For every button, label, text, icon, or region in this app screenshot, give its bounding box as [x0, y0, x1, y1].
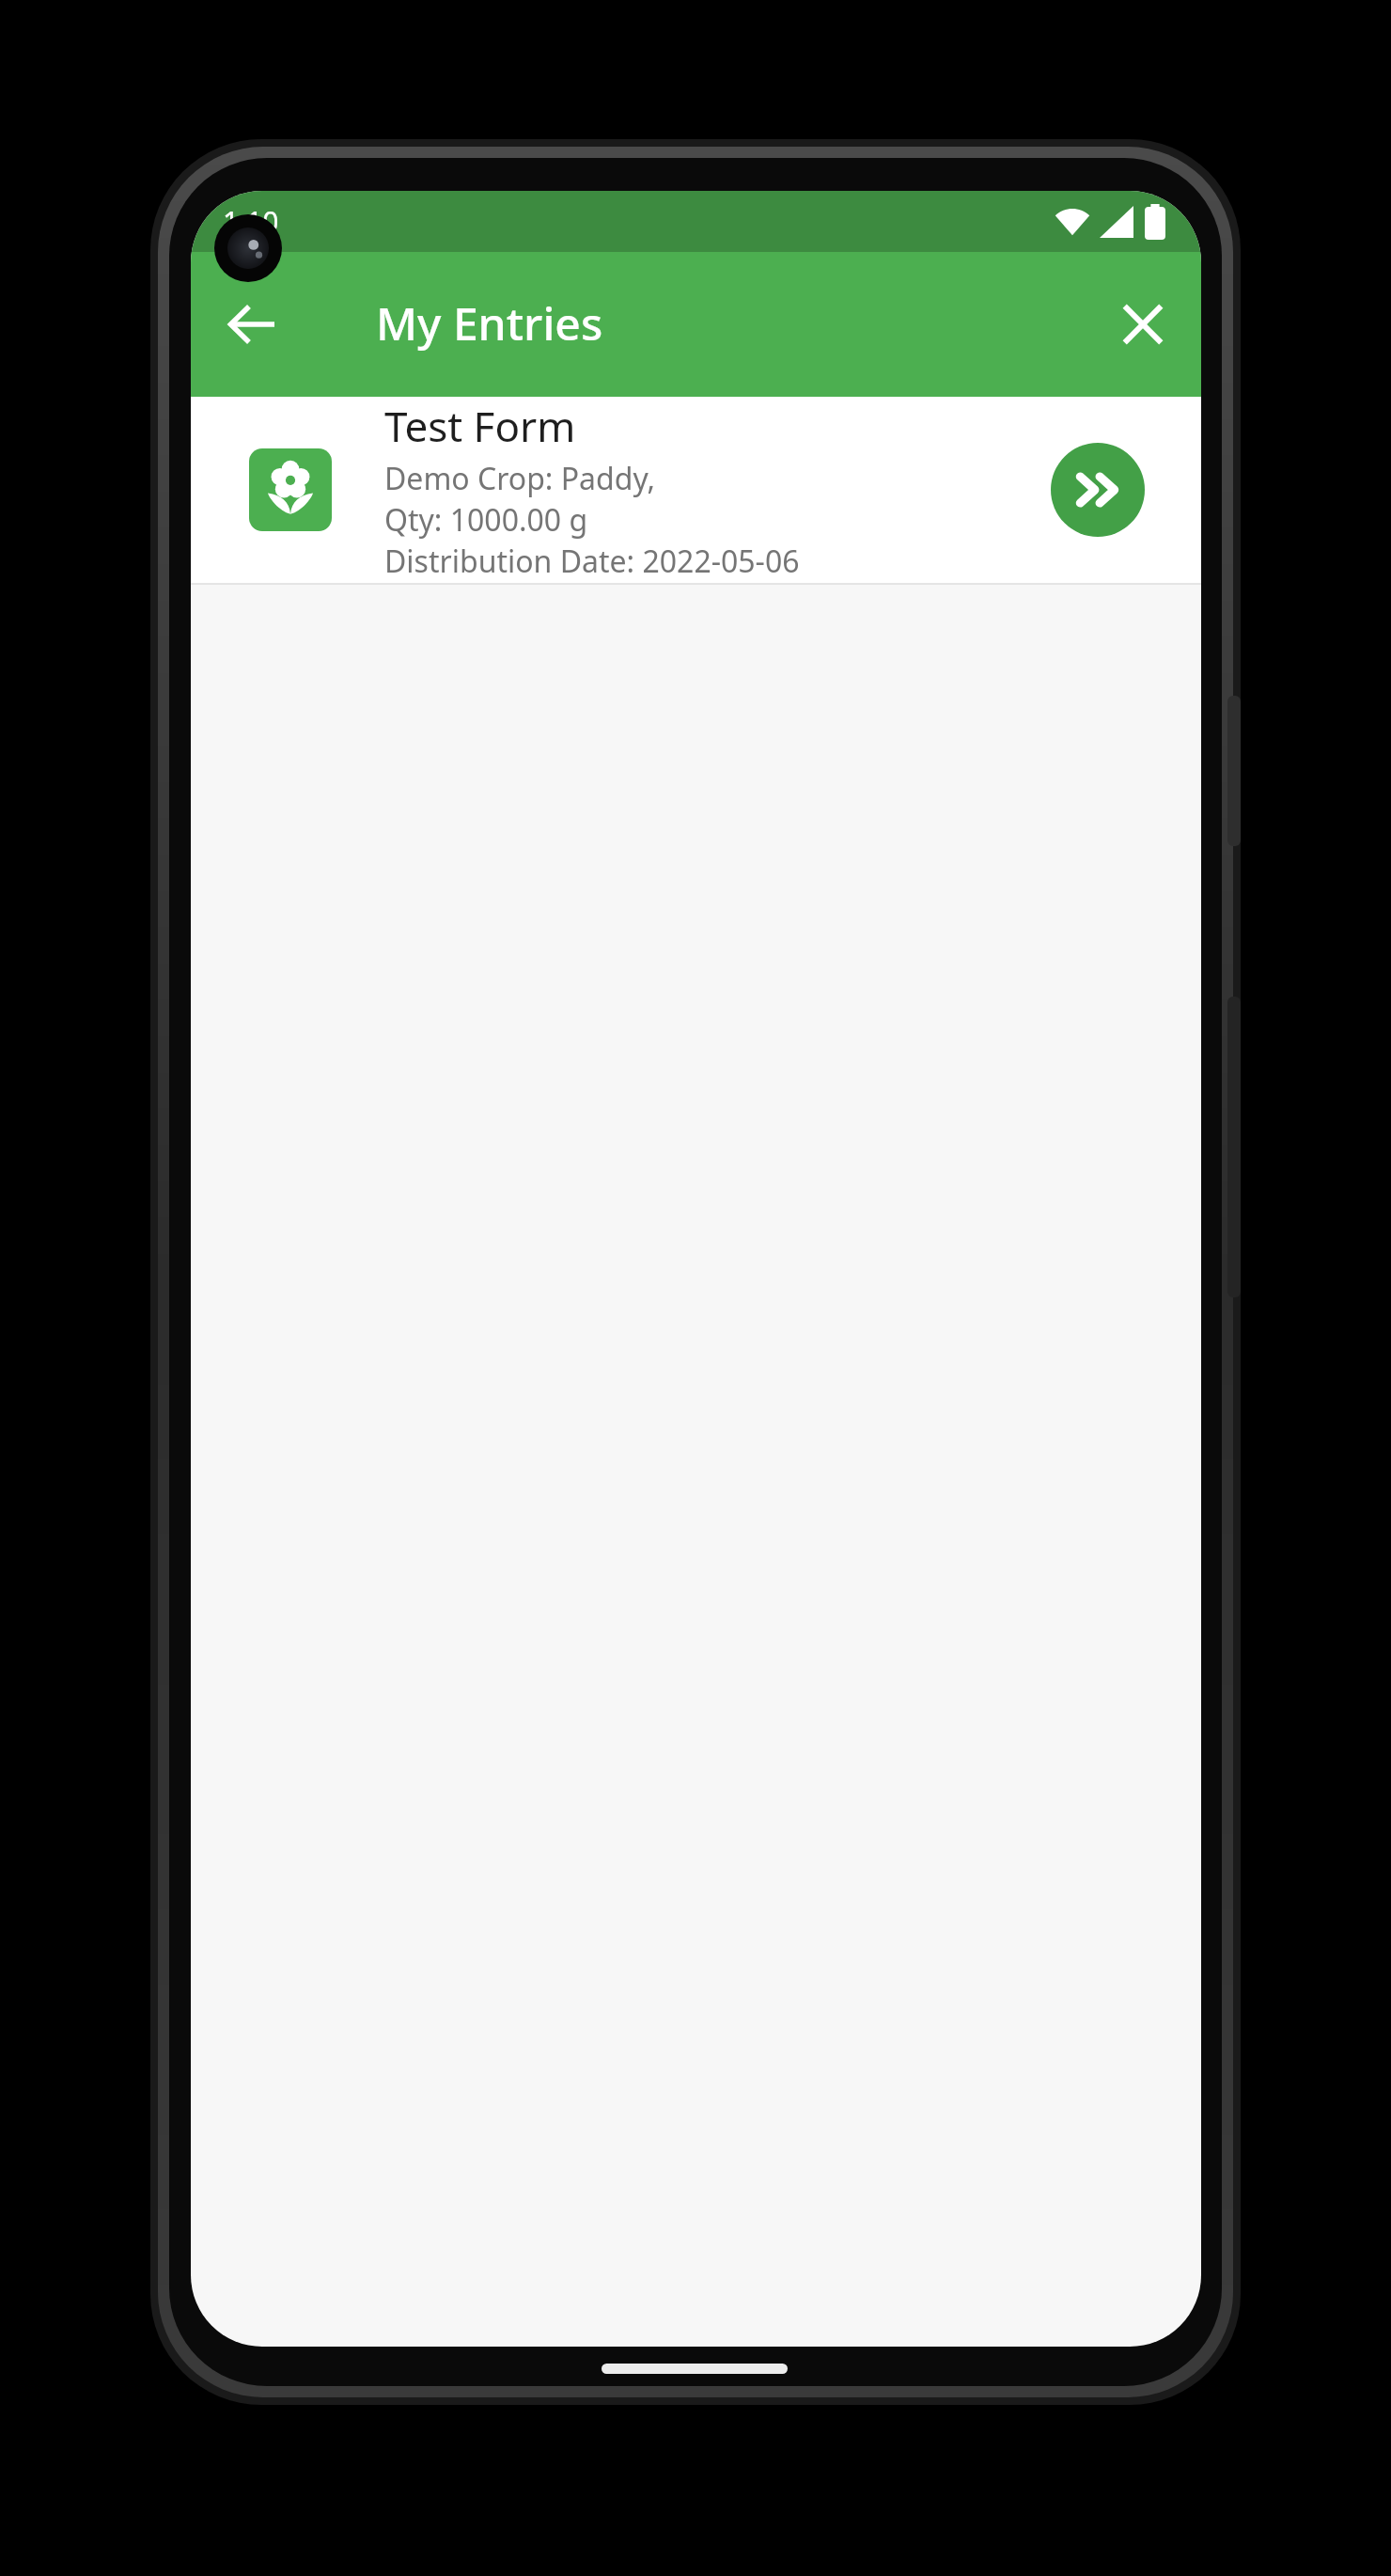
staticText: My Entries	[376, 292, 603, 353]
staticText: Test Form	[384, 398, 576, 454]
button[interactable]: Open entry	[1051, 443, 1145, 537]
staticText: Demo Crop: Paddy,	[384, 458, 656, 499]
button[interactable]: Close	[1098, 279, 1188, 369]
button[interactable]: Back	[208, 279, 298, 369]
staticText: 1:10	[223, 202, 279, 241]
staticText: Distribution Date: 2022-05-06	[384, 541, 800, 582]
button[interactable]: Test Form	[191, 397, 1201, 583]
staticText: Qty: 1000.00 g	[384, 499, 588, 541]
